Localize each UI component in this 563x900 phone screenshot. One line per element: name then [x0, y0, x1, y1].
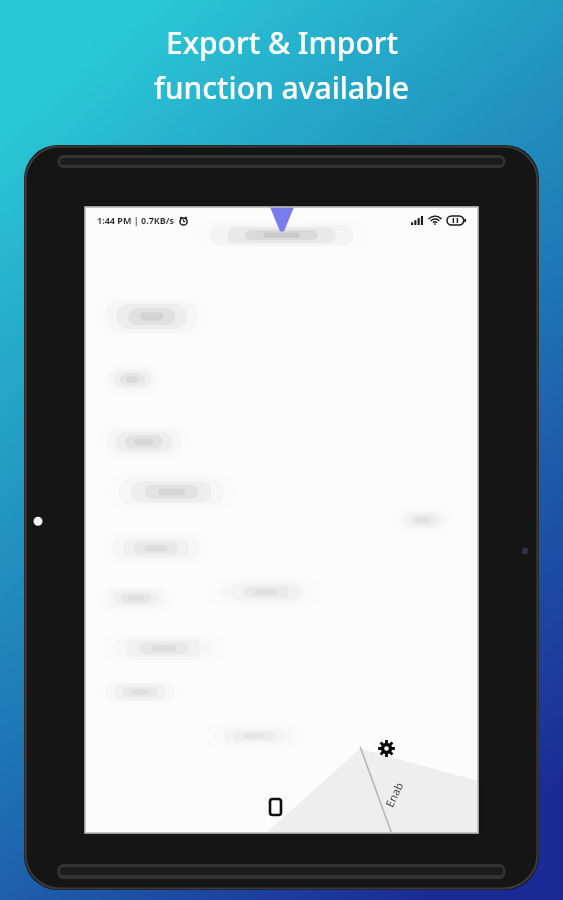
staticText: Enab — [382, 779, 406, 809]
button[interactable]: Device — [263, 795, 287, 819]
staticText: 1:44 PM | 0.7KB/s — [97, 214, 175, 226]
staticText: function available — [154, 67, 409, 108]
staticText: Export & Import — [166, 22, 398, 63]
button[interactable]: Settings — [373, 735, 399, 761]
